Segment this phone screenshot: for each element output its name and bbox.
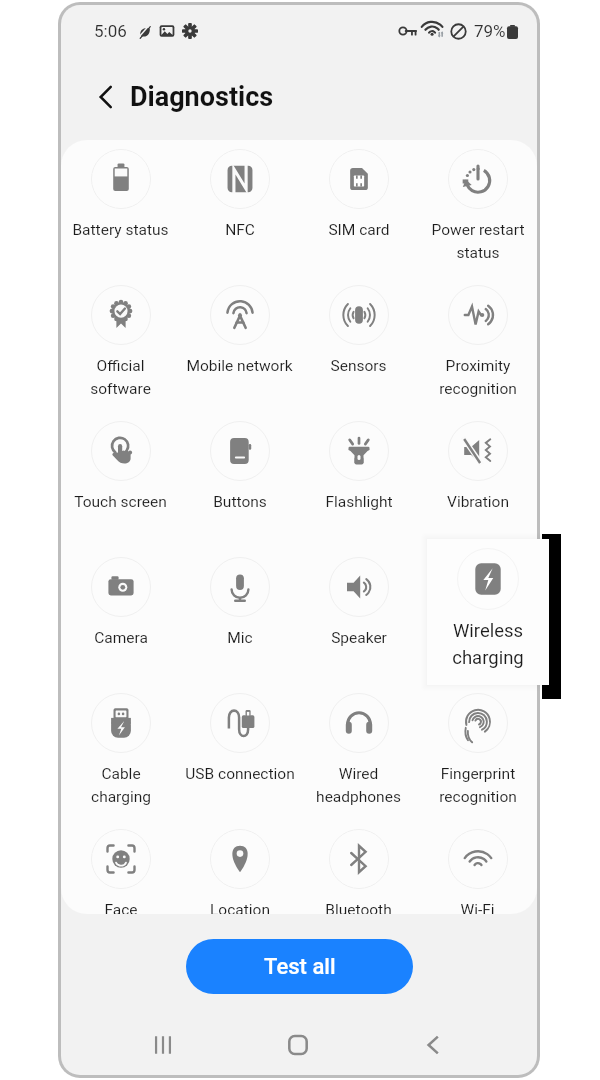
staticText: Mic bbox=[227, 629, 253, 647]
staticText: Battery status bbox=[72, 221, 169, 239]
staticText: Wired headphones bbox=[316, 765, 401, 806]
button[interactable]: Sensors bbox=[299, 276, 418, 412]
staticText: Face bbox=[104, 901, 138, 914]
button[interactable]: Mobile network bbox=[180, 276, 299, 412]
button[interactable]: Battery status bbox=[61, 140, 180, 276]
staticText: USB connection bbox=[185, 765, 295, 783]
staticText: SIM card bbox=[328, 221, 390, 239]
staticText: Speaker bbox=[331, 629, 387, 647]
button[interactable]: Flashlight bbox=[299, 412, 418, 548]
button[interactable]: Recents bbox=[95, 1015, 230, 1075]
staticText: Mobile network bbox=[186, 357, 293, 375]
staticText: Fingerprint recognition bbox=[439, 765, 517, 806]
staticText: Flashlight bbox=[325, 493, 393, 511]
button[interactable]: Face bbox=[61, 820, 180, 914]
button[interactable]: Bluetooth bbox=[299, 820, 418, 914]
button[interactable]: Wi-Fi bbox=[418, 820, 537, 914]
button[interactable]: Wireless charging bbox=[418, 548, 537, 684]
staticText: Camera bbox=[94, 629, 148, 647]
staticText: Proximity recognition bbox=[439, 357, 517, 398]
staticText: 5:06 bbox=[94, 21, 127, 41]
button[interactable]: Buttons bbox=[180, 412, 299, 548]
button[interactable]: Speaker bbox=[299, 548, 418, 684]
button[interactable]: Wired headphones bbox=[299, 684, 418, 820]
button[interactable]: Touch screen bbox=[61, 412, 180, 548]
button[interactable]: Home bbox=[230, 1015, 365, 1075]
button[interactable]: Camera bbox=[61, 548, 180, 684]
button[interactable]: USB connection bbox=[180, 684, 299, 820]
staticText: Diagnostics bbox=[130, 81, 274, 113]
staticText: Cable charging bbox=[91, 765, 151, 806]
staticText: 79% bbox=[474, 21, 506, 41]
button[interactable]: Vibration bbox=[418, 412, 537, 548]
staticText: Wi-Fi bbox=[460, 901, 495, 914]
staticText: Bluetooth bbox=[325, 901, 392, 914]
button[interactable]: Back bbox=[365, 1015, 500, 1075]
staticText: Sensors bbox=[330, 357, 387, 375]
staticText: Touch screen bbox=[74, 493, 167, 511]
button[interactable]: Official software bbox=[61, 276, 180, 412]
staticText: Power restart status bbox=[431, 221, 525, 262]
button[interactable]: Proximity recognition bbox=[418, 276, 537, 412]
staticText: Official software bbox=[90, 357, 151, 398]
staticText: Location bbox=[210, 901, 270, 914]
staticText: NFC bbox=[225, 221, 255, 239]
staticText: Wireless charging bbox=[448, 629, 508, 670]
button[interactable]: Cable charging bbox=[61, 684, 180, 820]
button[interactable]: Wireless charging bbox=[427, 539, 549, 685]
staticText: Test all bbox=[264, 954, 336, 980]
staticText: Vibration bbox=[447, 493, 509, 511]
button[interactable]: Power restart status bbox=[418, 140, 537, 276]
button[interactable]: SIM card bbox=[299, 140, 418, 276]
button[interactable]: Mic bbox=[180, 548, 299, 684]
staticText: Wireless charging bbox=[452, 620, 524, 668]
button[interactable]: NFC bbox=[180, 140, 299, 276]
button[interactable]: Back bbox=[83, 75, 127, 119]
staticText: Buttons bbox=[213, 493, 267, 511]
button[interactable]: Location bbox=[180, 820, 299, 914]
button[interactable]: Fingerprint recognition bbox=[418, 684, 537, 820]
button[interactable]: Test all bbox=[186, 939, 413, 994]
